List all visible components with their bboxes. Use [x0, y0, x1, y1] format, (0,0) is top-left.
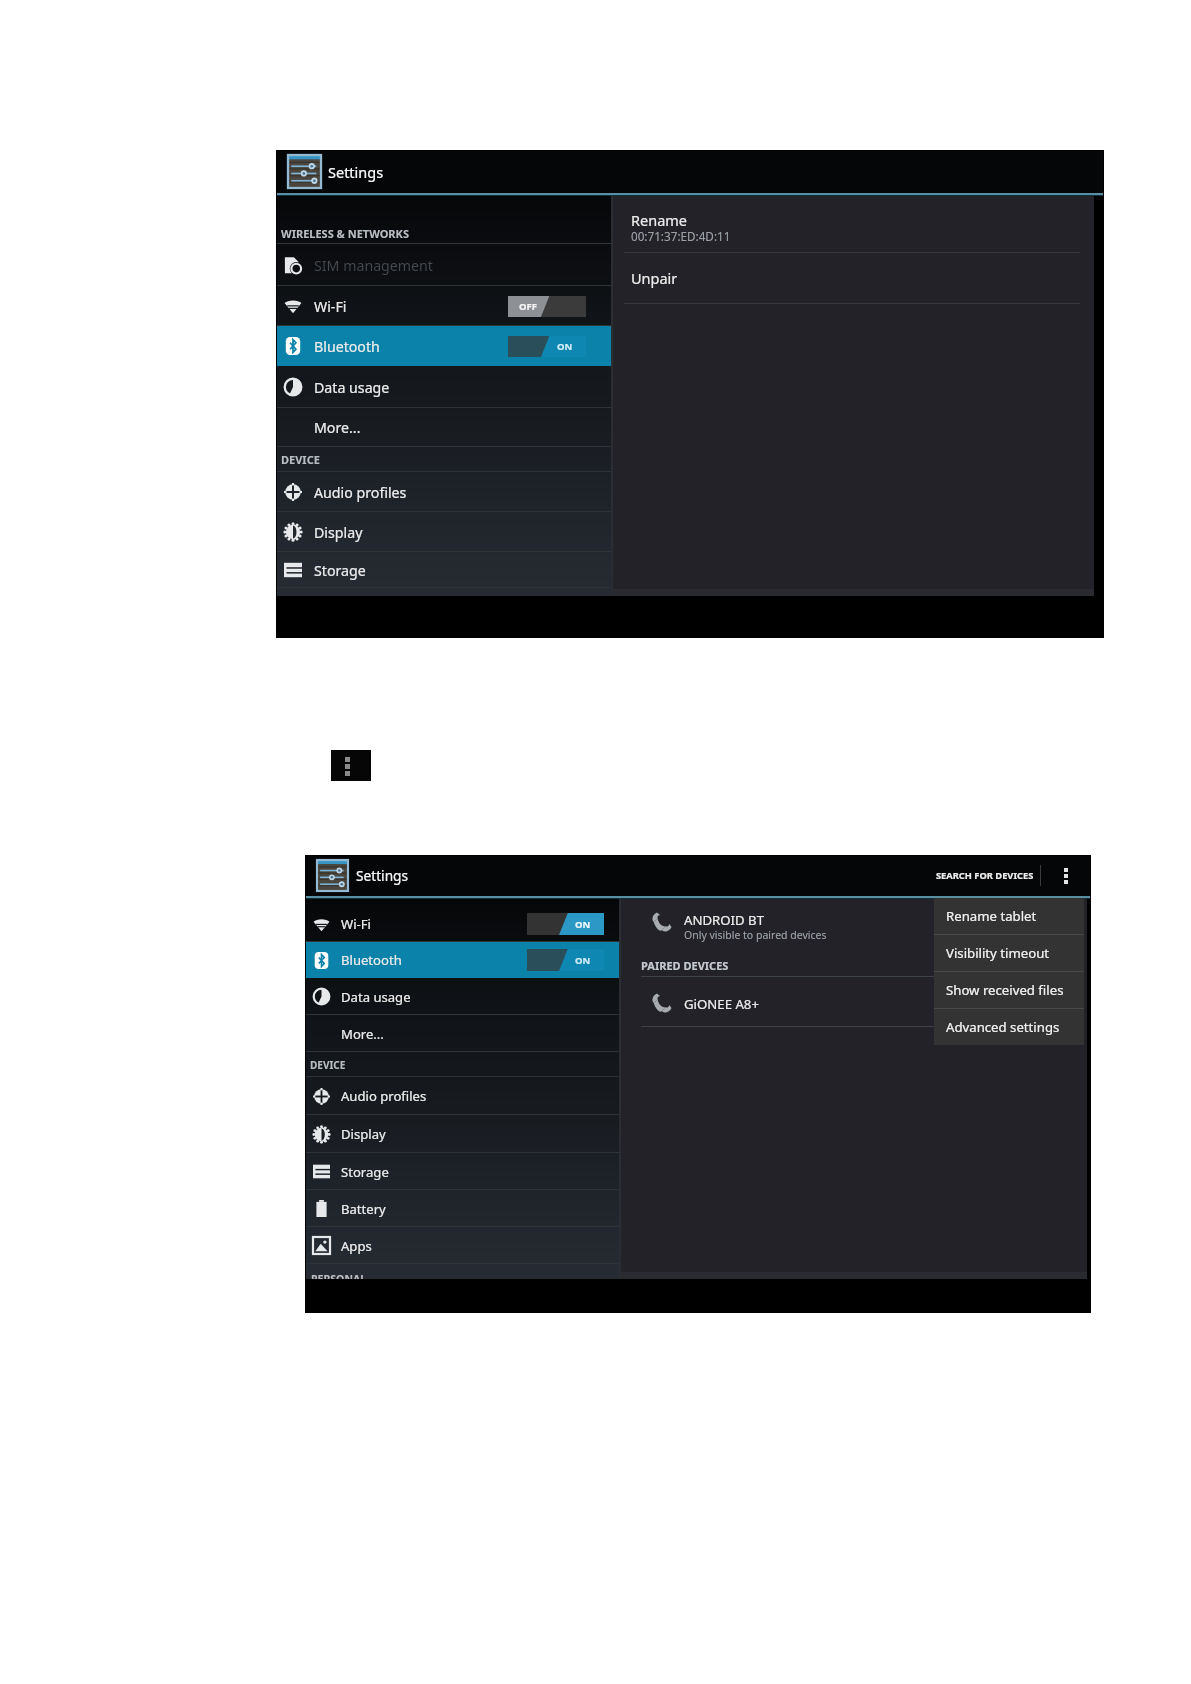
staticText: PAIRED DEVICES	[641, 958, 729, 973]
button[interactable]: More options	[331, 750, 371, 781]
button[interactable]: Unpair	[612, 253, 1094, 303]
button[interactable]: Data usage	[276, 366, 611, 408]
staticText: ON	[557, 340, 573, 353]
staticText: Bluetooth	[314, 337, 380, 356]
staticText: Show received files	[946, 981, 1064, 999]
button[interactable]: Battery	[305, 1190, 619, 1227]
button[interactable]: Wi-Fi	[276, 286, 611, 326]
staticText: WIRELESS & NETWORKS	[281, 226, 409, 241]
button[interactable]: More...	[305, 1015, 619, 1052]
staticText: ON	[575, 954, 591, 967]
button[interactable]: ANDROID BT	[621, 903, 934, 955]
staticText: Display	[314, 523, 363, 542]
staticText: PERSONAL	[311, 1272, 367, 1279]
button[interactable]: Bluetooth	[305, 942, 619, 978]
staticText: ON	[575, 918, 591, 931]
staticText: Apps	[341, 1237, 372, 1255]
staticText: Rename tablet	[946, 907, 1037, 925]
button[interactable]: Show received files	[934, 972, 1084, 1008]
staticText: 00:71:37:ED:4D:11	[631, 228, 731, 244]
staticText: Rename	[631, 210, 688, 230]
staticText: Bluetooth	[341, 951, 402, 969]
staticText: ANDROID BT	[684, 911, 765, 929]
staticText: Storage	[314, 561, 366, 580]
button[interactable]: Storage	[305, 1153, 619, 1190]
staticText: Data usage	[314, 378, 390, 397]
staticText: Settings	[328, 162, 384, 182]
staticText: Wi-Fi	[314, 297, 347, 316]
button[interactable]: Rename tablet	[934, 898, 1084, 934]
staticText: Wi-Fi	[341, 915, 371, 933]
button[interactable]: Display	[305, 1115, 619, 1153]
button[interactable]: SEARCH FOR DEVICES	[936, 855, 1034, 896]
button[interactable]: Data usage	[305, 978, 619, 1015]
staticText: OFF	[519, 300, 537, 313]
button[interactable]: SIM management	[276, 244, 611, 286]
button[interactable]: Advanced settings	[934, 1009, 1084, 1045]
button[interactable]: Rename	[612, 196, 1094, 252]
button[interactable]: Bluetooth	[276, 326, 611, 366]
staticText: Storage	[341, 1163, 389, 1181]
staticText: DEVICE	[281, 452, 320, 467]
button[interactable]: Display	[276, 512, 611, 552]
staticText: Settings	[356, 866, 409, 885]
button[interactable]: Storage	[276, 552, 611, 588]
staticText: DEVICE	[310, 1058, 346, 1072]
staticText: Unpair	[631, 268, 678, 288]
staticText: Only visible to paired devices	[684, 928, 827, 942]
button[interactable]: More options	[1041, 855, 1091, 896]
button[interactable]: More...	[276, 408, 611, 447]
button[interactable]: Audio profiles	[305, 1077, 619, 1115]
staticText: Audio profiles	[314, 483, 407, 502]
button[interactable]: Audio profiles	[276, 472, 611, 512]
staticText: GiONEE A8+	[684, 995, 759, 1013]
staticText: Battery	[341, 1200, 386, 1218]
button[interactable]: Visibility timeout	[934, 935, 1084, 971]
button[interactable]: Wi-Fi	[305, 906, 619, 942]
staticText: Audio profiles	[341, 1087, 427, 1105]
staticText: Display	[341, 1125, 386, 1143]
staticText: Data usage	[341, 988, 411, 1006]
staticText: More...	[314, 418, 361, 437]
button[interactable]: GiONEE A8+	[621, 981, 934, 1026]
staticText: Advanced settings	[946, 1018, 1060, 1036]
staticText: More...	[341, 1025, 384, 1043]
staticText: Visibility timeout	[946, 944, 1050, 962]
staticText: SIM management	[314, 256, 433, 275]
button[interactable]: Apps	[305, 1227, 619, 1264]
staticText: SEARCH FOR DEVICES	[936, 869, 1034, 882]
